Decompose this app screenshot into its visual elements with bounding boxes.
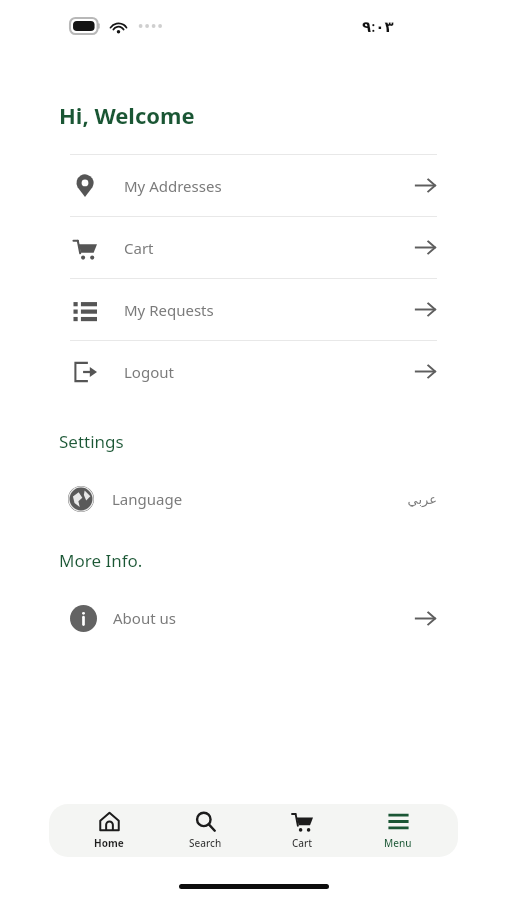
button[interactable]: About us (0, 594, 507, 642)
button[interactable]: Home (72, 811, 146, 850)
staticText: Hi, Welcome (59, 100, 195, 130)
staticText: Search (189, 836, 222, 850)
staticText: Settings (59, 430, 124, 453)
staticText: Menu (384, 836, 412, 850)
button[interactable]: My Requests (70, 279, 437, 340)
button[interactable]: Menu (361, 811, 435, 850)
staticText: More Info. (59, 549, 143, 572)
staticText: Home (94, 836, 124, 850)
staticText: Cart (124, 238, 154, 258)
button[interactable]: My Addresses (70, 155, 437, 216)
staticText: Cart (292, 836, 313, 850)
staticText: عربي (407, 492, 437, 507)
staticText: Logout (124, 362, 174, 382)
staticText: My Requests (124, 300, 214, 320)
staticText: About us (113, 608, 176, 628)
staticText: My Addresses (124, 176, 222, 196)
button[interactable]: Search (168, 811, 242, 850)
button[interactable]: Cart (265, 811, 339, 850)
button[interactable]: Language (0, 475, 507, 523)
button[interactable]: Cart (70, 217, 437, 278)
button[interactable]: Logout (70, 341, 437, 402)
staticText: ٩:٠٣ (362, 16, 394, 36)
staticText: Language (112, 489, 183, 509)
